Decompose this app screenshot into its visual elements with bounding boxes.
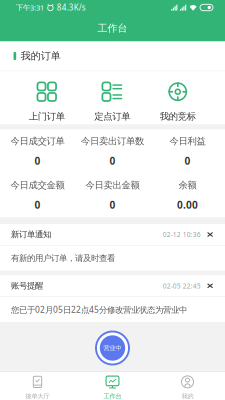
staticText: 0: [109, 198, 115, 212]
staticText: 接单大厅: [25, 392, 49, 400]
staticText: 我的: [181, 392, 193, 400]
staticText: 0: [34, 198, 40, 212]
staticText: 今日成交订单: [10, 135, 64, 147]
staticText: 您已于02月05日22点45分修改营业状态为营业中: [11, 304, 187, 315]
staticText: 上门订单: [29, 111, 65, 122]
staticText: 新订单通知: [11, 229, 51, 240]
staticText: 今日卖出金额: [85, 179, 139, 191]
staticText: 营业中: [103, 344, 121, 352]
staticText: 02-05 22:45: [163, 281, 201, 290]
button[interactable]: 工作台: [75, 375, 150, 400]
button[interactable]: 接单大厅: [0, 375, 75, 400]
staticText: 0.00: [177, 198, 198, 212]
button[interactable]: 上门订单: [14, 82, 79, 122]
staticText: 0: [109, 154, 115, 168]
button[interactable]: 关闭通知: [201, 275, 213, 296]
staticText: 84.3K/s: [57, 2, 86, 13]
staticText: 我的订单: [21, 50, 61, 62]
staticText: 工作台: [97, 22, 127, 35]
button[interactable]: 我的: [150, 375, 225, 400]
button[interactable]: 关闭通知: [201, 224, 213, 245]
staticText: 定点订单: [94, 111, 130, 122]
staticText: 我的竞标: [160, 111, 196, 122]
staticText: 今日利益: [169, 135, 205, 147]
staticText: 下午3:31: [16, 2, 44, 13]
button[interactable]: 营业中: [94, 330, 130, 366]
staticText: 工作台: [103, 392, 121, 400]
staticText: 0: [34, 154, 40, 168]
staticText: 有新的用户订单，请及时查看: [11, 253, 115, 263]
staticText: 余额: [178, 179, 196, 191]
staticText: 02-12 10:36: [163, 230, 201, 239]
staticText: 今日卖出订单数: [81, 135, 144, 147]
button[interactable]: 定点订单: [79, 82, 145, 122]
staticText: 今日成交金额: [10, 179, 64, 191]
staticText: 账号提醒: [11, 280, 43, 291]
staticText: 0: [184, 154, 190, 168]
button[interactable]: 我的竞标: [145, 82, 210, 122]
